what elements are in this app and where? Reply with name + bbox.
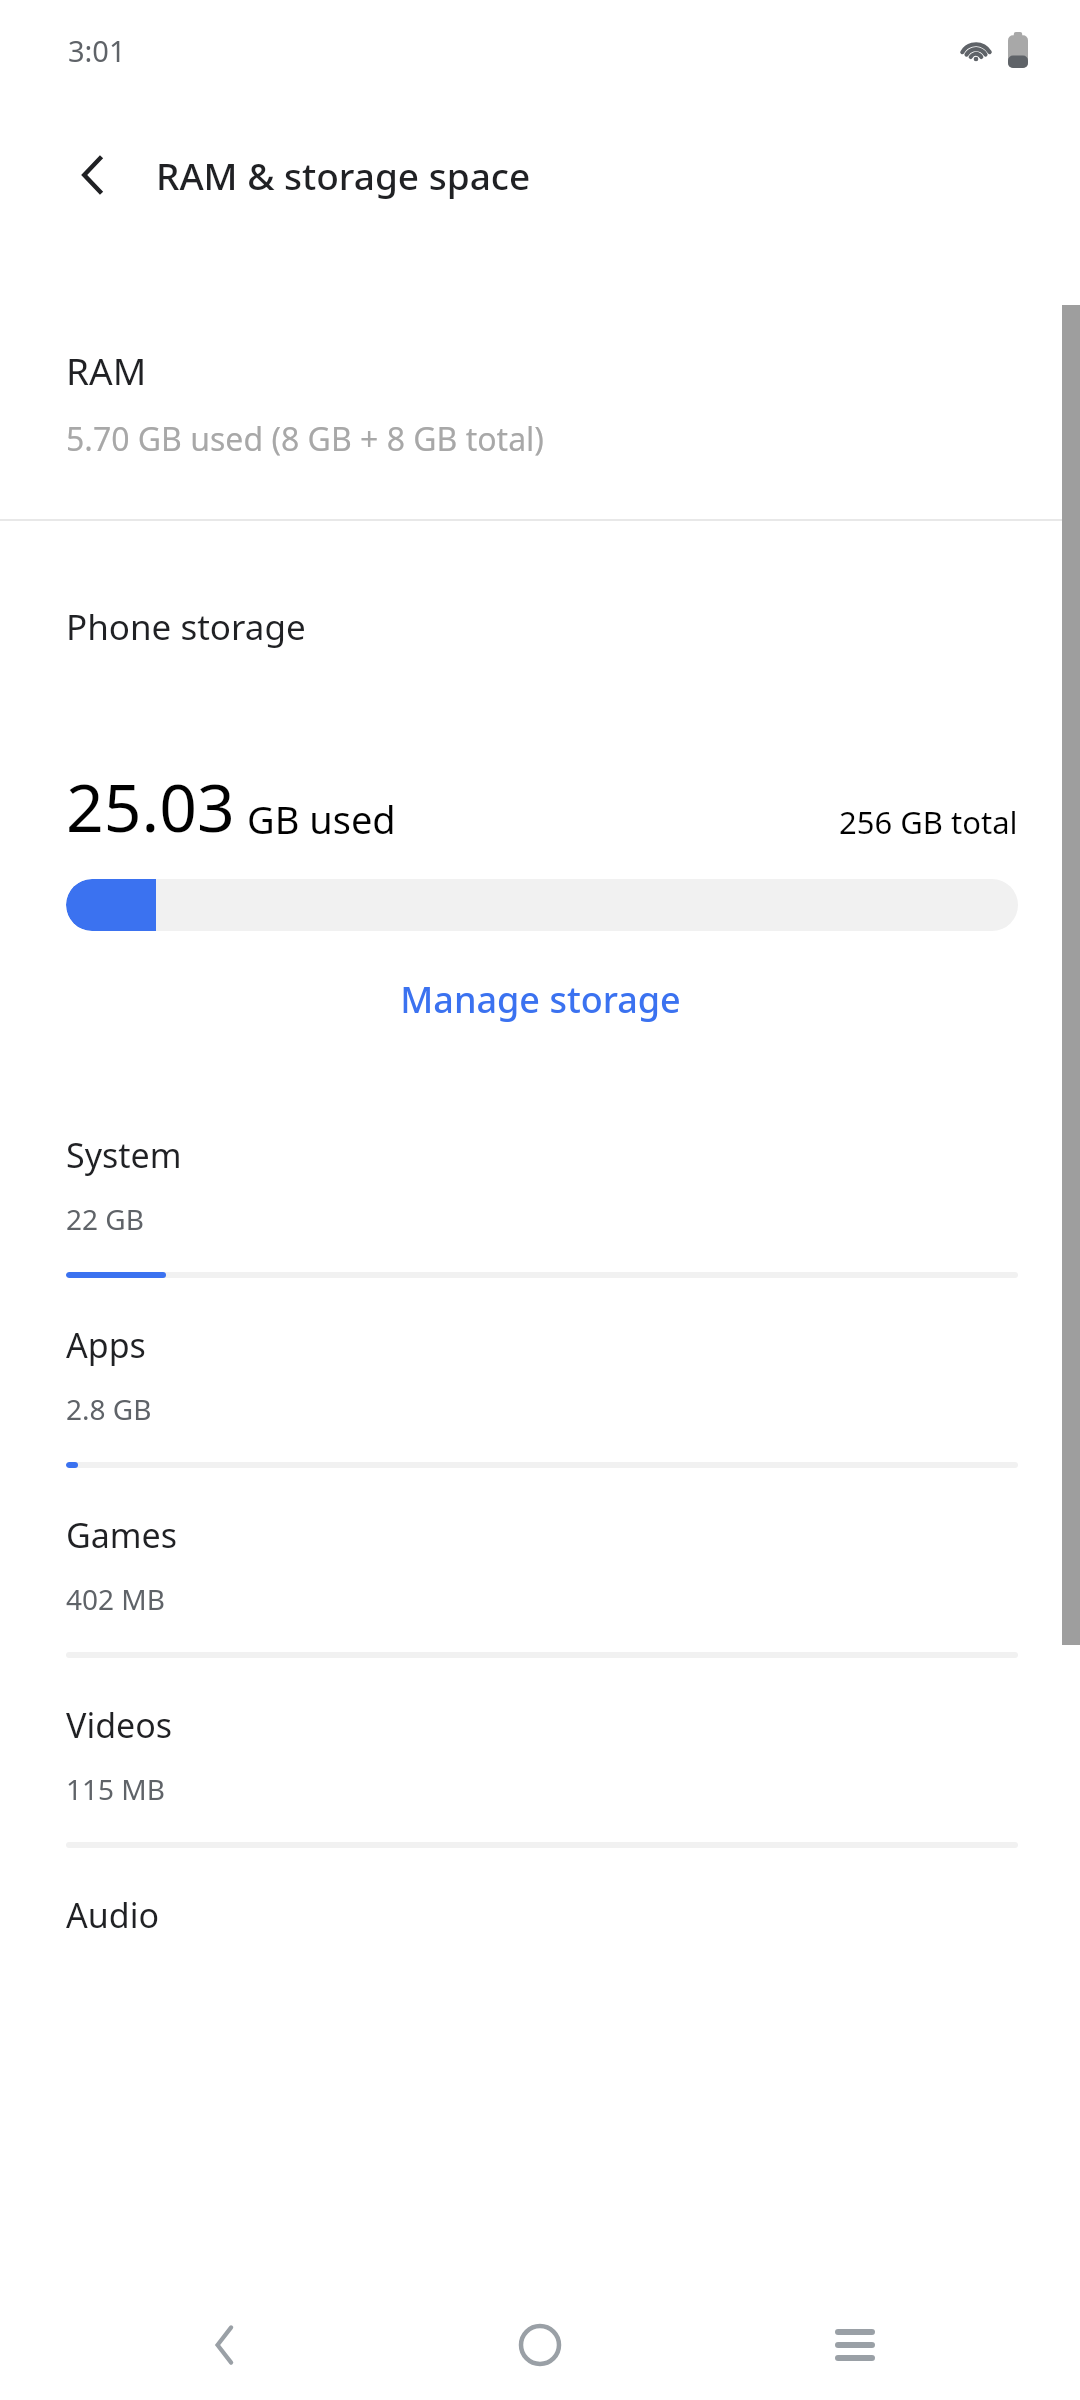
button[interactable]: Videos <box>0 1658 1080 1848</box>
staticText: 2.8 GB <box>66 1390 152 1428</box>
staticText: 25.03 <box>66 761 235 851</box>
staticText: 5.70 GB used (8 GB + 8 GB total) <box>66 417 544 461</box>
button[interactable]: System <box>0 1088 1080 1278</box>
staticText: Videos <box>66 1702 173 1748</box>
staticText: 402 MB <box>66 1580 165 1618</box>
button[interactable]: Home <box>490 2295 590 2395</box>
button[interactable]: Games <box>0 1468 1080 1658</box>
button[interactable]: Audio <box>0 1848 1080 1938</box>
staticText: Apps <box>66 1322 146 1368</box>
button[interactable]: Back <box>175 2295 275 2395</box>
button[interactable]: Recent apps <box>805 2295 905 2395</box>
staticText: System <box>66 1132 182 1178</box>
staticText: Manage storage <box>400 975 681 1024</box>
staticText: 115 MB <box>66 1770 165 1808</box>
staticText: 22 GB <box>66 1200 144 1238</box>
staticText: Audio <box>66 1892 159 1938</box>
staticText: RAM & storage space <box>156 150 531 200</box>
staticText: 256 GB total <box>839 801 1018 843</box>
staticText: RAM <box>66 345 147 395</box>
staticText: GB used <box>247 793 396 845</box>
staticText: Phone storage <box>66 603 306 651</box>
staticText: Games <box>66 1512 178 1558</box>
button[interactable]: Back <box>58 140 128 210</box>
button[interactable]: Apps <box>0 1278 1080 1468</box>
button[interactable]: Manage storage <box>0 931 1080 1068</box>
staticText: 3:01 <box>68 31 126 70</box>
button[interactable]: RAM <box>0 250 1080 519</box>
